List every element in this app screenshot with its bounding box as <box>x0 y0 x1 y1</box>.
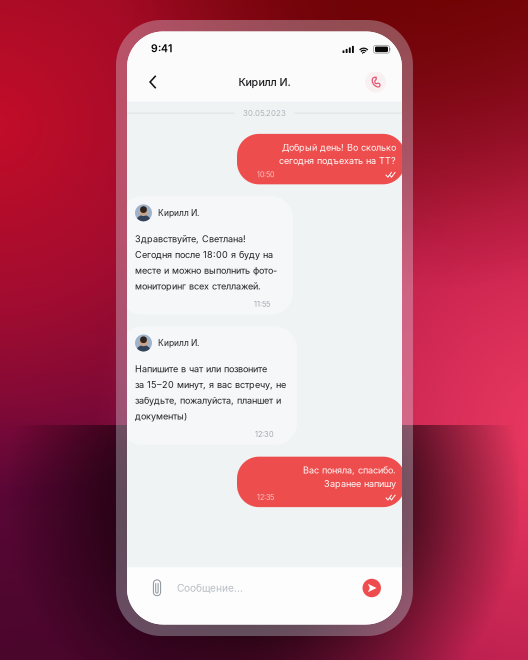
staticText: Добрый день! Во сколько <box>282 142 396 153</box>
button[interactable]: Back <box>141 70 165 94</box>
staticText: документы) <box>135 411 187 422</box>
staticText: Напишите в чат или позвоните <box>135 363 267 374</box>
staticText: Сегодня после 18:00 я буду на <box>135 249 273 260</box>
staticText: месте и можно выполнить фото- <box>135 265 277 276</box>
staticText: 11:55 <box>254 300 270 308</box>
staticText: 30.05.2023 <box>243 108 286 118</box>
staticText: за 15–20 минут, я вас встречу, не <box>135 379 286 390</box>
staticText: Вас поняла, спасибо. <box>303 465 396 476</box>
staticText: Заранее напишу <box>324 478 396 489</box>
staticText: Кирилл И. <box>158 338 199 348</box>
button[interactable]: Attach file <box>146 577 168 599</box>
staticText: сегодня подъехать на ТТ? <box>279 155 396 166</box>
staticText: Кирилл И. <box>238 75 290 88</box>
staticText: 10:50 <box>257 170 274 179</box>
button[interactable]: Send <box>362 579 381 597</box>
staticText: мониторинг всех стеллажей. <box>135 281 261 292</box>
staticText: Кирилл И. <box>158 208 199 218</box>
staticText: 12:30 <box>255 430 274 439</box>
staticText: 9:41 <box>151 42 172 55</box>
button[interactable]: Call <box>365 71 386 92</box>
staticText: 12:35 <box>257 493 274 502</box>
staticText: Сообщение... <box>177 582 243 594</box>
staticText: Здравствуйте, Светлана! <box>135 233 246 244</box>
staticText: забудьте, пожалуйста, планшет и <box>135 395 281 406</box>
